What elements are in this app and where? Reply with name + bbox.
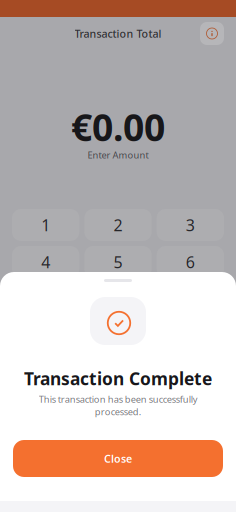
staticText: 5	[113, 251, 122, 272]
button[interactable]: Close	[13, 440, 223, 477]
staticText: 3	[186, 214, 195, 235]
staticText: €0.00	[71, 102, 165, 152]
button[interactable]: 0	[84, 320, 152, 352]
button[interactable]: 4	[12, 246, 79, 278]
staticText: 2	[113, 214, 122, 235]
staticText: 8	[113, 288, 122, 309]
staticText: Enter Amount	[87, 149, 148, 161]
button[interactable]: 6	[157, 246, 224, 278]
button[interactable]: 1	[12, 209, 79, 241]
staticText: 4	[41, 251, 50, 272]
staticText: 6	[186, 251, 195, 272]
button[interactable]: 2	[84, 209, 152, 241]
staticText: Close	[104, 451, 132, 466]
staticText: Transaction Complete	[24, 367, 212, 390]
button[interactable]: 8	[84, 283, 152, 315]
staticText: Transaction Total	[74, 26, 161, 41]
staticText: 1	[41, 214, 50, 235]
staticText: This transaction has been successfully p…	[38, 393, 197, 418]
button[interactable]: Information	[200, 22, 224, 45]
button[interactable]: 5	[84, 246, 152, 278]
staticText: 0	[113, 325, 122, 346]
button[interactable]: 3	[157, 209, 224, 241]
